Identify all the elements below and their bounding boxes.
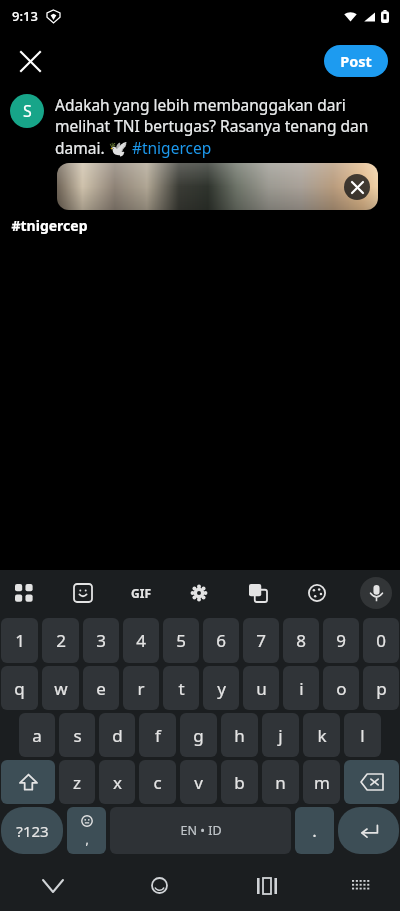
staticText: 4	[136, 629, 146, 652]
button[interactable]: Emoji	[67, 807, 106, 854]
button[interactable]: c	[139, 760, 176, 804]
button[interactable]: Switch keyboard	[320, 860, 400, 911]
button[interactable]: EN • ID	[110, 807, 291, 854]
staticText: ?123	[16, 821, 49, 841]
button[interactable]: p	[363, 666, 399, 710]
staticText: Adakah yang lebih membanggakan dari meli…	[55, 94, 388, 159]
staticText: r	[137, 677, 145, 700]
staticText: h	[234, 724, 245, 747]
staticText: t	[178, 677, 185, 700]
button[interactable]: w	[42, 666, 79, 710]
staticText: 9	[336, 629, 346, 652]
staticText: q	[14, 677, 25, 700]
staticText: 3	[96, 629, 106, 652]
button[interactable]: m	[303, 760, 340, 804]
button[interactable]: Hide keyboard	[0, 860, 106, 911]
button[interactable]: x	[99, 760, 135, 804]
button[interactable]: b	[221, 760, 258, 804]
button[interactable]: Close	[8, 39, 52, 83]
staticText: c	[153, 771, 162, 794]
button[interactable]: Remove image	[344, 174, 370, 200]
button[interactable]: 5	[163, 618, 199, 663]
button[interactable]: s	[59, 713, 95, 757]
staticText: e	[96, 677, 106, 700]
staticText: S	[23, 100, 32, 122]
staticText: p	[376, 677, 387, 700]
staticText: .	[312, 819, 317, 842]
button[interactable]: Home	[106, 860, 213, 911]
button[interactable]: #tnigercep	[0, 210, 400, 240]
staticText: u	[256, 677, 267, 700]
staticText: f	[155, 724, 161, 747]
staticText: k	[317, 724, 327, 747]
button[interactable]: j	[262, 713, 299, 757]
button[interactable]: 8	[283, 618, 319, 663]
staticText: m	[314, 771, 330, 794]
button[interactable]: Post	[324, 45, 388, 77]
button[interactable]: t	[163, 666, 199, 710]
button[interactable]: y	[203, 666, 239, 710]
button[interactable]: S	[10, 94, 44, 128]
button[interactable]: Remove image	[57, 163, 378, 210]
button[interactable]: Themes	[301, 577, 333, 609]
button[interactable]: k	[303, 713, 340, 757]
button[interactable]: r	[123, 666, 159, 710]
staticText: a	[32, 724, 42, 747]
button[interactable]: Shift	[1, 760, 55, 804]
button[interactable]: o	[323, 666, 359, 710]
staticText: EN • ID	[180, 822, 222, 839]
staticText: 1	[15, 629, 25, 652]
button[interactable]: 3	[83, 618, 119, 663]
staticText: o	[336, 677, 347, 700]
staticText: d	[112, 724, 123, 747]
button[interactable]: q	[1, 666, 38, 710]
staticText: j	[278, 724, 283, 747]
button[interactable]: h	[221, 713, 258, 757]
staticText: #tnigercep	[11, 216, 88, 235]
button[interactable]: Settings	[183, 577, 215, 609]
button[interactable]: Recents	[213, 860, 320, 911]
button[interactable]: f	[139, 713, 176, 757]
staticText: i	[299, 677, 304, 700]
staticText: s	[73, 724, 82, 747]
button[interactable]: 9	[323, 618, 359, 663]
button[interactable]: 6	[203, 618, 239, 663]
button[interactable]: 0	[363, 618, 399, 663]
button[interactable]: n	[262, 760, 299, 804]
button[interactable]: 2	[42, 618, 79, 663]
button[interactable]: 7	[243, 618, 279, 663]
button[interactable]: GIF	[126, 578, 156, 608]
button[interactable]: Apps	[8, 577, 40, 609]
button[interactable]: z	[59, 760, 95, 804]
button[interactable]: e	[83, 666, 119, 710]
button[interactable]: l	[344, 713, 381, 757]
button[interactable]: a	[19, 713, 55, 757]
button[interactable]: 1	[1, 618, 38, 663]
staticText: 9:13	[12, 7, 38, 25]
button[interactable]: .	[295, 807, 334, 854]
staticText: 5	[176, 629, 186, 652]
staticText: Post	[340, 51, 372, 71]
staticText: GIF	[131, 585, 151, 601]
staticText: b	[234, 771, 245, 794]
staticText: n	[275, 771, 286, 794]
button[interactable]: Backspace	[344, 760, 399, 804]
button[interactable]: Voice input	[360, 577, 392, 609]
button[interactable]: Stickers	[67, 577, 99, 609]
staticText: g	[193, 724, 204, 747]
staticText: 7	[256, 629, 266, 652]
button[interactable]: 4	[123, 618, 159, 663]
button[interactable]: v	[180, 760, 217, 804]
button[interactable]: d	[99, 713, 135, 757]
staticText: ,	[85, 831, 89, 847]
button[interactable]: i	[283, 666, 319, 710]
staticText: 6	[216, 629, 226, 652]
button[interactable]: ?123	[1, 807, 63, 854]
staticText: w	[54, 677, 68, 700]
staticText: y	[217, 677, 226, 700]
button[interactable]: Translate	[242, 577, 274, 609]
button[interactable]: g	[180, 713, 217, 757]
button[interactable]: Enter	[338, 807, 399, 854]
button[interactable]: u	[243, 666, 279, 710]
staticText: 2	[56, 629, 66, 652]
